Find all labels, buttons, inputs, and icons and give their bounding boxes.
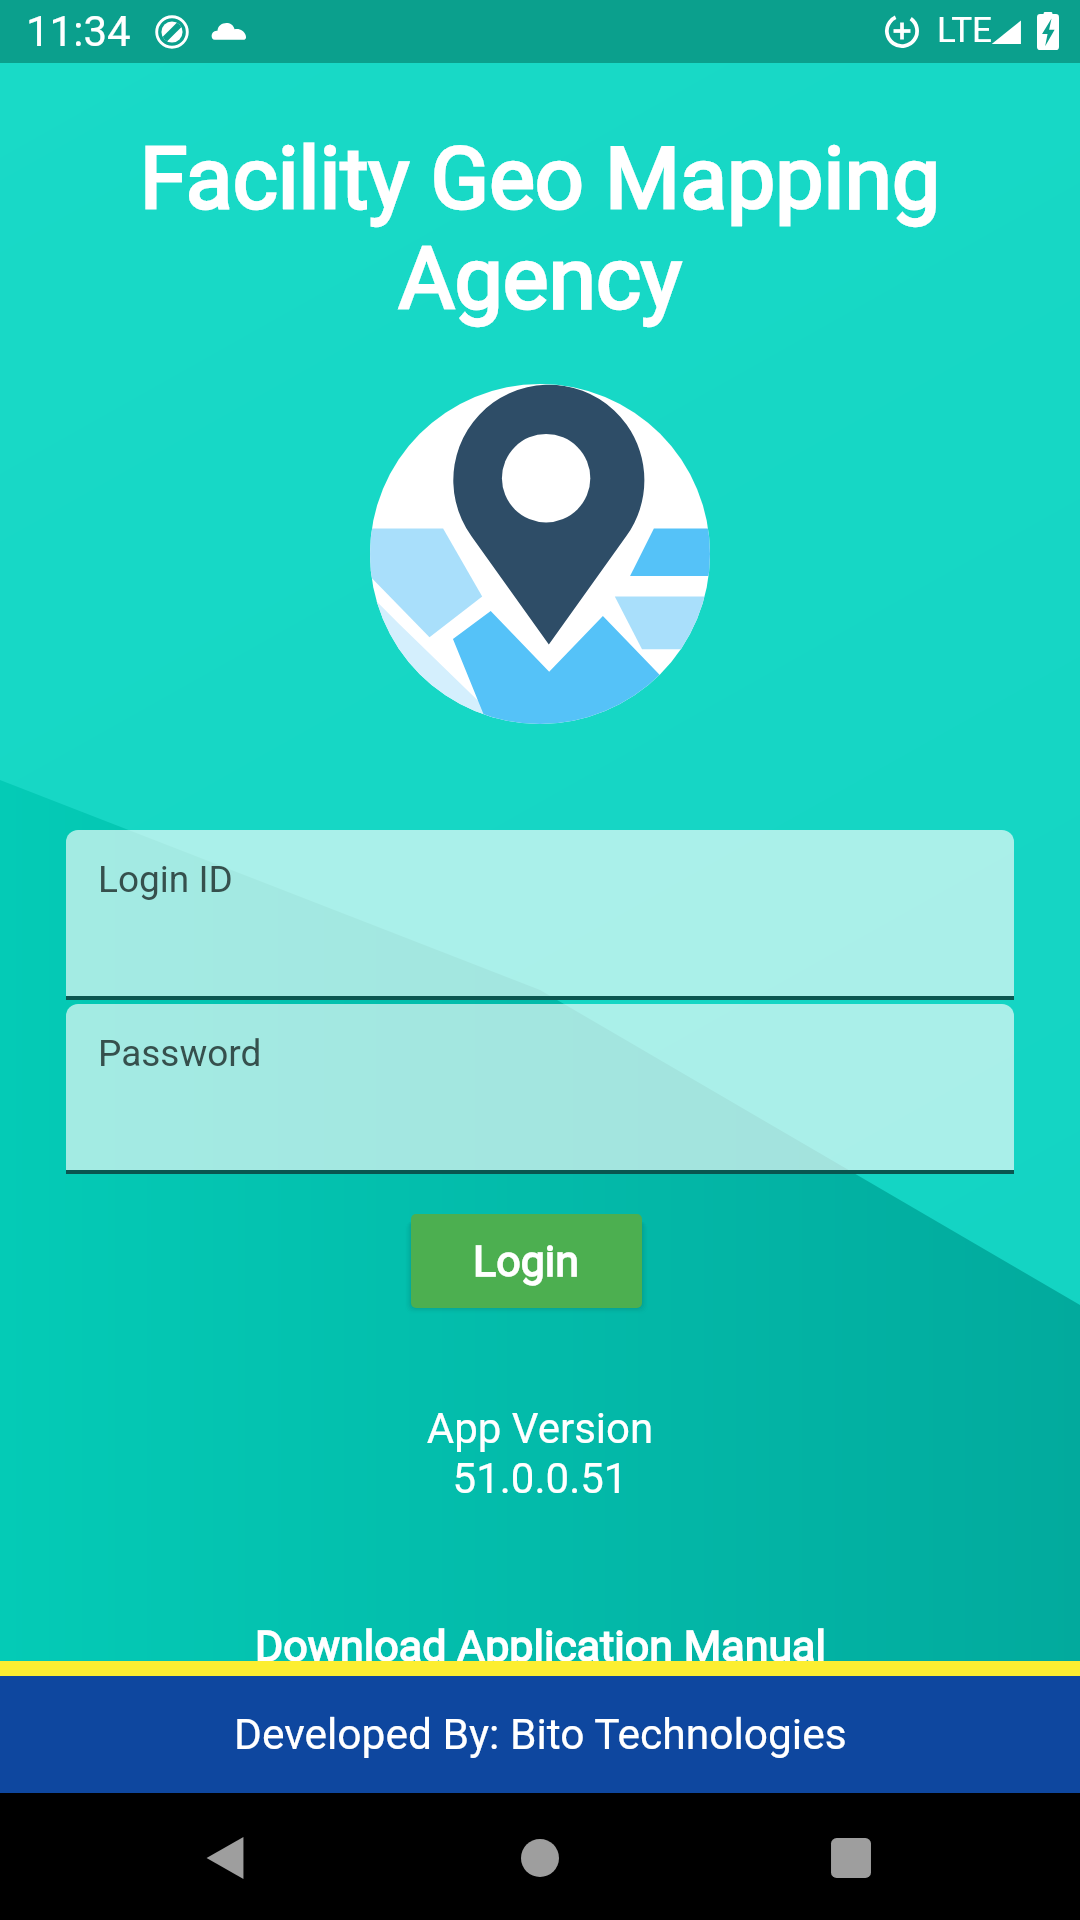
staticText: Login ID <box>98 858 233 901</box>
staticText: 11:34 <box>26 7 131 56</box>
button[interactable]: Home <box>504 1822 576 1894</box>
staticText: LTE <box>937 10 992 51</box>
staticText: App Version 51.0.0.51 <box>0 1404 1080 1503</box>
staticText: Login <box>473 1236 580 1286</box>
staticText: Password <box>98 1032 262 1075</box>
button[interactable]: Download Application Manual <box>0 1621 1080 1677</box>
button[interactable]: Login <box>411 1214 642 1308</box>
staticText: Download Application Manual <box>255 1621 826 1671</box>
button[interactable]: Password <box>66 1004 1014 1176</box>
staticText: Developed By: Bito Technologies <box>234 1710 847 1760</box>
button[interactable]: Recent apps <box>815 1822 887 1894</box>
button[interactable]: Login ID <box>66 830 1014 1002</box>
staticText: Facility Geo Mapping Agency <box>0 128 1080 329</box>
button[interactable]: Back <box>189 1822 261 1894</box>
